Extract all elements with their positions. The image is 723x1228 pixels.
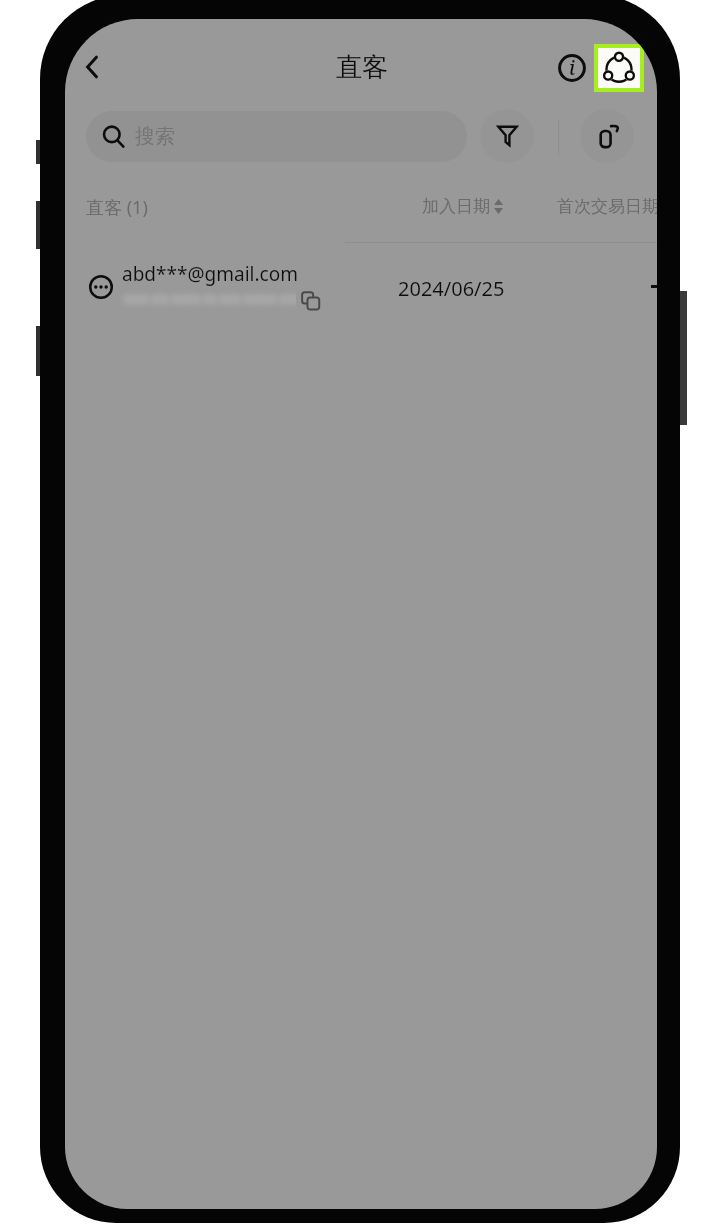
button[interactable]: 加入日期 [422, 196, 503, 217]
button[interactable]: Copy [297, 287, 323, 313]
button[interactable]: Back [70, 45, 114, 89]
staticText: abd***@gmail.com [122, 261, 298, 287]
staticText: 2024/06/25 [398, 275, 505, 302]
staticText: 搜索 [135, 124, 175, 149]
button[interactable]: Information [552, 48, 592, 88]
button[interactable]: 搜索 [86, 111, 467, 162]
button[interactable]: More options [84, 270, 117, 303]
button[interactable]: abd***@gmail.com [122, 261, 298, 287]
staticText: 直客 (1) [86, 195, 148, 220]
button[interactable]: Export [580, 109, 634, 163]
button[interactable]: Share [598, 48, 640, 88]
button[interactable]: Filter [480, 109, 534, 163]
staticText: i [569, 55, 576, 81]
staticText: 直客 [336, 51, 388, 84]
staticText: 首次交易日期 [557, 196, 657, 217]
staticText: 加入日期 [422, 196, 490, 217]
